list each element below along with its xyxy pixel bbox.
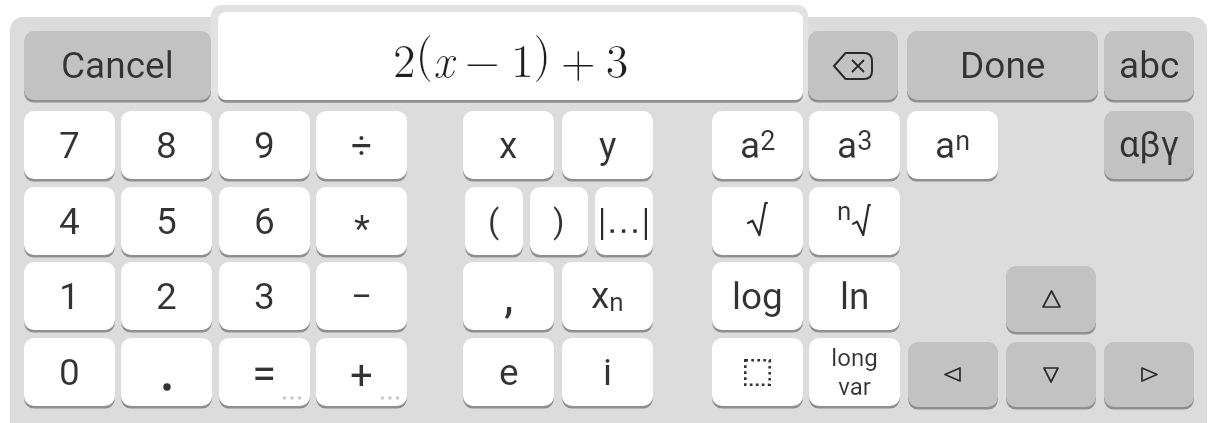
button[interactable] (121, 338, 212, 406)
button[interactable] (1104, 342, 1194, 407)
button[interactable]: ) (530, 187, 588, 255)
staticText: − (351, 275, 373, 318)
button[interactable]: 6 (219, 187, 310, 255)
staticText: a2 (740, 124, 776, 167)
staticText: a3 (837, 124, 873, 167)
staticText: log (732, 275, 783, 318)
button[interactable]: 7 (24, 111, 115, 179)
staticText: ) (553, 202, 565, 241)
button[interactable]: 3 (219, 262, 310, 330)
staticText: 3 (254, 275, 275, 318)
staticText: n (837, 196, 852, 226)
staticText: Done (960, 44, 1046, 87)
staticText: 1 (59, 275, 80, 318)
staticText: abc (1119, 44, 1180, 87)
button[interactable]: a3 (809, 111, 900, 179)
button[interactable]: 5 (121, 187, 212, 255)
button[interactable]: i (562, 338, 653, 406)
staticText: * (354, 207, 370, 250)
button[interactable]: αβγ (1104, 111, 1194, 179)
button[interactable]: = (219, 338, 310, 406)
staticText: ÷ (351, 124, 373, 167)
staticText: + (350, 352, 373, 399)
staticText: ln (840, 275, 870, 318)
button[interactable] (595, 187, 653, 255)
button[interactable]: Done (907, 31, 1098, 100)
button[interactable]: 1 (24, 262, 115, 330)
button[interactable]: 8 (121, 111, 212, 179)
staticText: 6 (254, 200, 275, 243)
staticText: = (252, 348, 277, 400)
button[interactable]: 2(x − 1) + 3 (218, 12, 803, 100)
staticText: ( (488, 202, 500, 241)
staticText: long var (831, 344, 878, 401)
button[interactable]: an (907, 111, 998, 179)
staticText: y (599, 124, 617, 167)
button[interactable]: xn (562, 262, 653, 330)
button[interactable] (1006, 266, 1096, 332)
button[interactable]: , (463, 262, 554, 330)
button[interactable]: 4 (24, 187, 115, 255)
staticText: x (499, 124, 518, 167)
staticText: 0 (59, 351, 80, 394)
button[interactable]: log (712, 262, 803, 330)
staticText: Cancel (61, 44, 174, 87)
button[interactable]: y (562, 111, 653, 179)
button[interactable]: ( (465, 187, 523, 255)
button[interactable]: e (463, 338, 554, 406)
staticText: e (499, 351, 519, 394)
button[interactable] (1006, 342, 1096, 407)
button[interactable]: 0 (24, 338, 115, 406)
staticText: 2(x − 1) + 3 (393, 18, 629, 90)
staticText: 8 (156, 124, 177, 167)
staticText: an (935, 124, 971, 167)
button[interactable]: abc (1104, 31, 1194, 100)
staticText: αβγ (1119, 124, 1179, 166)
button[interactable] (908, 342, 998, 407)
button[interactable]: Cancel (24, 31, 211, 100)
button[interactable]: x (463, 111, 554, 179)
button[interactable]: − (316, 262, 407, 330)
staticText: xn (591, 274, 624, 318)
button[interactable] (808, 31, 898, 100)
button[interactable]: long var (809, 338, 900, 406)
staticText: 9 (254, 124, 275, 167)
staticText: 5 (156, 200, 177, 243)
staticText: , (504, 267, 514, 323)
button[interactable]: + (316, 338, 407, 406)
button[interactable] (712, 338, 803, 406)
button[interactable]: a2 (712, 111, 803, 179)
staticText: 7 (59, 124, 80, 167)
button[interactable]: * (316, 187, 407, 255)
button[interactable]: 2 (121, 262, 212, 330)
button[interactable]: n (809, 187, 900, 255)
button[interactable]: ln (809, 262, 900, 330)
staticText: 4 (59, 200, 80, 243)
button[interactable]: ÷ (316, 111, 407, 179)
staticText: 2 (156, 275, 177, 318)
button[interactable] (712, 187, 803, 255)
button[interactable]: 9 (219, 111, 310, 179)
staticText: i (603, 351, 612, 394)
